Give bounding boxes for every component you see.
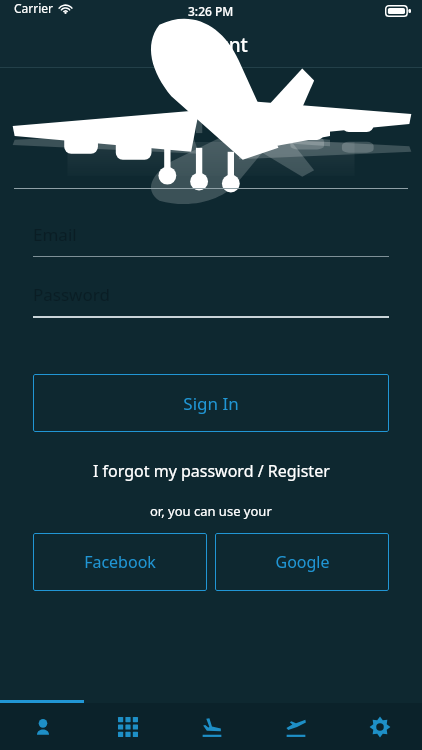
button[interactable]: Facebook: [33, 533, 207, 591]
button[interactable]: Email: [33, 223, 389, 257]
staticText: 3:26 PM: [188, 3, 234, 19]
staticText: Account: [174, 32, 248, 58]
button[interactable]: Departures: [254, 703, 338, 750]
button[interactable]: Sign In: [33, 374, 389, 432]
button[interactable]: Password: [33, 283, 389, 318]
button[interactable]: I forgot my password / Register: [85, 456, 338, 486]
button[interactable]: Google: [215, 533, 389, 591]
staticText: Google: [275, 551, 330, 573]
staticText: Facebook: [84, 551, 156, 573]
button[interactable]: Settings: [338, 703, 422, 750]
staticText: Password: [33, 283, 110, 306]
button[interactable]: Apps: [85, 703, 170, 750]
button[interactable]: Arrivals: [170, 703, 254, 750]
button[interactable]: Account: [0, 703, 85, 750]
staticText: Sign In: [183, 392, 239, 415]
staticText: Carrier: [14, 0, 54, 16]
staticText: Email: [33, 223, 77, 246]
staticText: or, you can use your: [150, 502, 272, 520]
